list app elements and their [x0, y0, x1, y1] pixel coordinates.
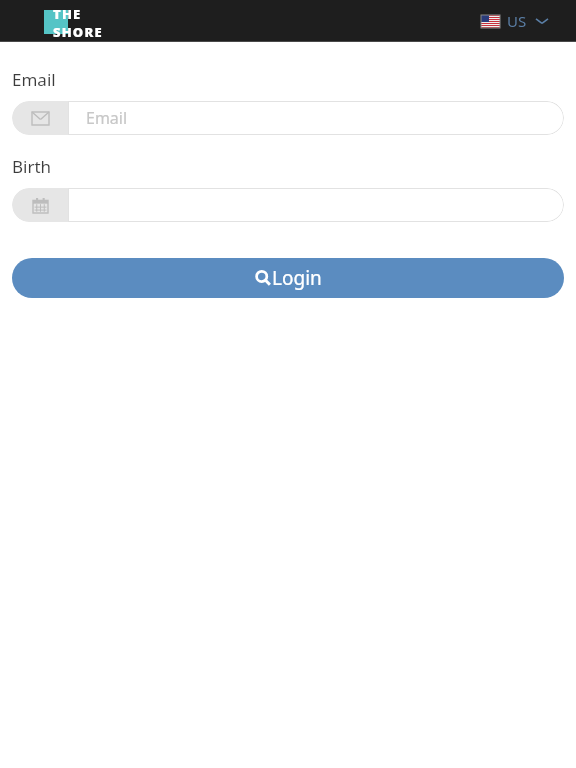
- button[interactable]: US: [479, 7, 550, 35]
- button[interactable]: [12, 188, 564, 222]
- staticText: Birth: [12, 155, 52, 178]
- button[interactable]: Email: [12, 101, 564, 135]
- button[interactable]: Login: [12, 258, 564, 298]
- staticText: US: [507, 11, 527, 31]
- staticText: Login: [272, 265, 322, 291]
- staticText: THE: [53, 5, 82, 23]
- staticText: SHORE: [53, 23, 103, 37]
- staticText: Email: [86, 107, 128, 129]
- staticText: Email: [12, 68, 56, 91]
- button[interactable]: The Shore home: [44, 5, 128, 37]
